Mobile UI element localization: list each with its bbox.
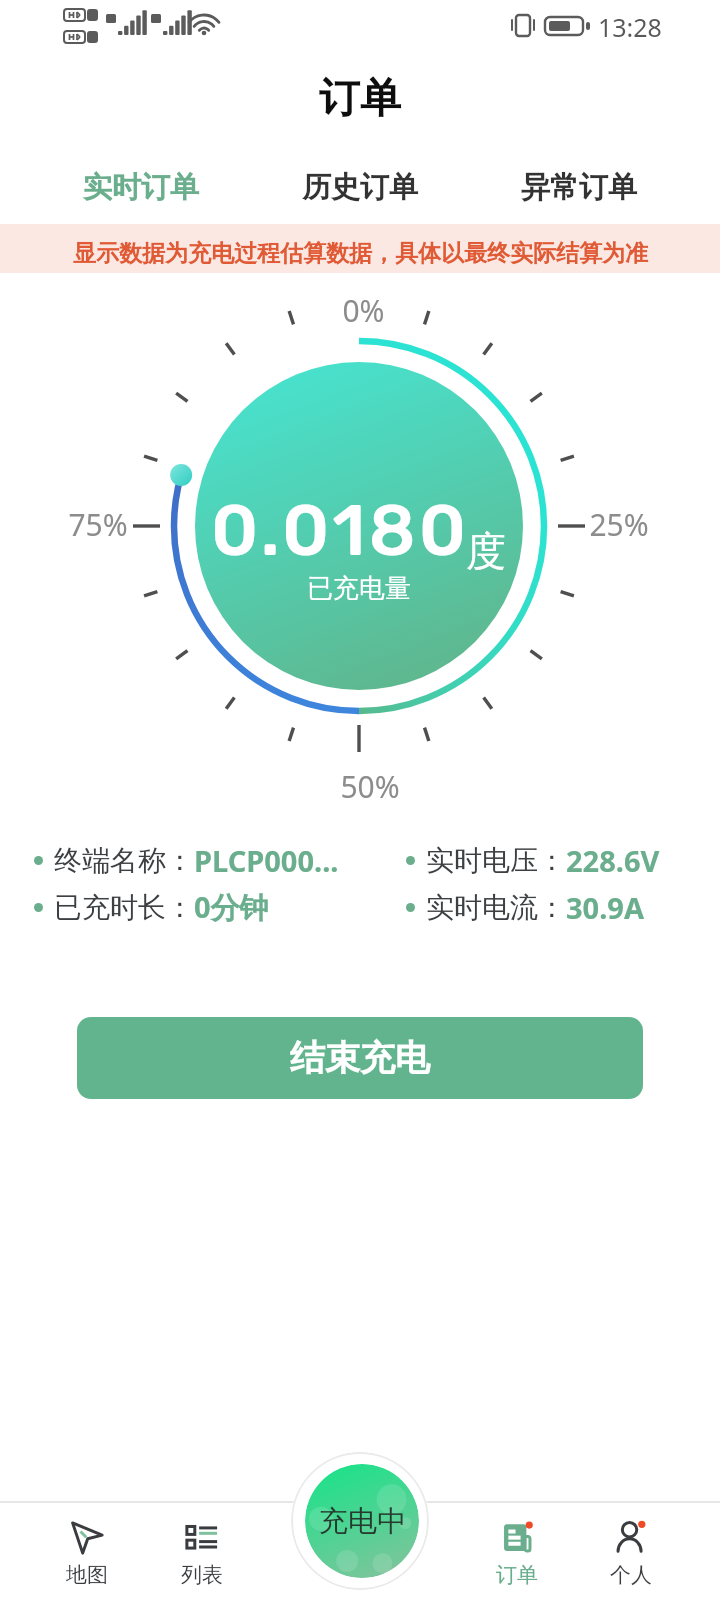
staticText: 13:28 (598, 10, 662, 44)
staticText: 0% (342, 290, 385, 331)
button[interactable]: 实时订单 (32, 142, 250, 224)
staticText: 0.0180 (200, 488, 480, 573)
staticText: 75% (68, 504, 128, 545)
staticText: 50% (340, 766, 400, 807)
button[interactable]: 列表 (145, 1503, 259, 1600)
staticText: 异常订单 (521, 169, 637, 206)
staticText: 地图 (66, 1562, 108, 1588)
staticText: 25% (589, 504, 649, 545)
staticText: 订单 (496, 1562, 538, 1588)
staticText: 实时电压： (426, 843, 566, 878)
staticText: 结束充电 (290, 1036, 430, 1080)
staticText: 实时订单 (83, 169, 199, 206)
staticText: 订单 (319, 73, 401, 125)
button[interactable]: 订单 (460, 1503, 574, 1600)
staticText: 终端名称： (54, 843, 194, 878)
button[interactable]: 实时电流： (406, 887, 644, 927)
staticText: 个人 (610, 1562, 652, 1588)
staticText: 充电中 (319, 1503, 406, 1540)
staticText: 实时电流： (426, 890, 566, 925)
button[interactable]: 终端名称： (34, 840, 339, 880)
staticText: 已充时长： (54, 890, 194, 925)
button[interactable]: 地图 (30, 1503, 144, 1600)
staticText: 已充电量 (209, 572, 509, 605)
staticText: 228.6V (566, 841, 660, 880)
button[interactable]: 已充时长： (34, 887, 269, 927)
staticText: 显示数据为充电过程估算数据，具体以最终实际结算为准 (73, 239, 648, 268)
button[interactable]: 实时电压： (406, 840, 660, 880)
staticText: PLCP000... (194, 841, 339, 880)
staticText: 度 (466, 526, 506, 576)
button[interactable]: 个人 (574, 1503, 688, 1600)
staticText: 历史订单 (302, 169, 418, 206)
button[interactable]: 异常订单 (469, 142, 688, 224)
staticText: 30.9A (566, 888, 644, 927)
staticText: 0分钟 (194, 887, 269, 927)
staticText: 列表 (181, 1562, 223, 1588)
button[interactable]: 结束充电 (77, 1017, 643, 1099)
button[interactable]: 历史订单 (250, 142, 469, 224)
button[interactable]: 充电中 (291, 1452, 429, 1590)
